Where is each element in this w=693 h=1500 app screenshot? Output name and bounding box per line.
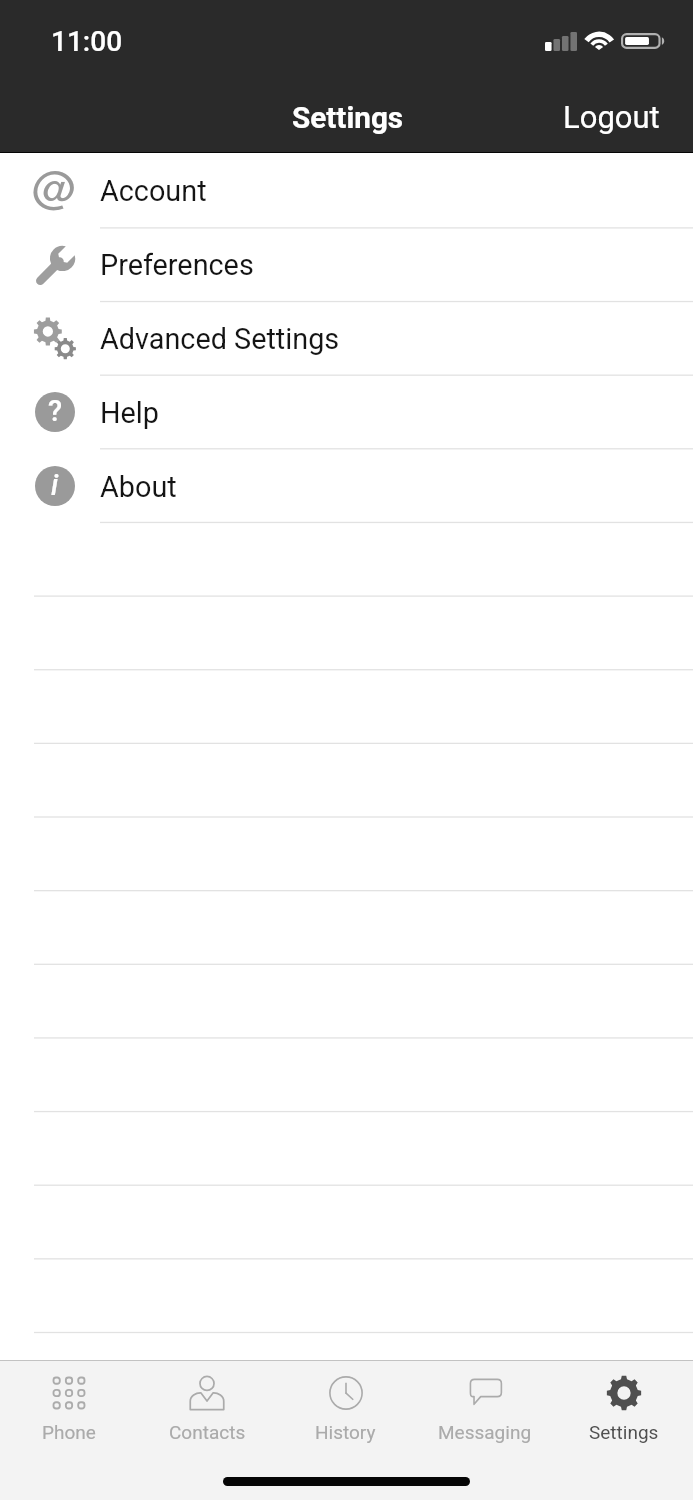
staticText: About — [100, 470, 177, 504]
button[interactable]: Advanced Settings — [0, 301, 693, 375]
staticText: Messaging — [438, 1421, 532, 1443]
staticText: 11:00 — [51, 25, 123, 58]
button[interactable]: Contacts — [138, 1361, 276, 1454]
staticText: Logout — [563, 99, 660, 135]
staticText: Settings — [589, 1421, 659, 1443]
staticText: Preferences — [100, 248, 254, 282]
staticText: Advanced Settings — [100, 322, 340, 356]
staticText: History — [315, 1421, 376, 1443]
staticText: @ — [32, 153, 77, 216]
staticText: Phone — [42, 1421, 96, 1443]
button[interactable]: History — [276, 1361, 415, 1454]
button[interactable]: Phone — [0, 1361, 138, 1454]
staticText: Help — [100, 396, 159, 430]
button[interactable]: Settings — [554, 1361, 693, 1454]
button[interactable]: i — [0, 449, 693, 523]
button[interactable]: Preferences — [0, 227, 693, 301]
staticText: i — [51, 468, 59, 502]
button[interactable]: Logout — [549, 86, 674, 148]
staticText: ? — [48, 394, 63, 428]
button[interactable]: @ — [0, 153, 693, 227]
staticText: Contacts — [169, 1421, 246, 1443]
staticText: Settings — [292, 100, 404, 135]
staticText: Account — [100, 174, 207, 208]
button[interactable]: ? — [0, 375, 693, 449]
button[interactable]: Messaging — [415, 1361, 554, 1454]
